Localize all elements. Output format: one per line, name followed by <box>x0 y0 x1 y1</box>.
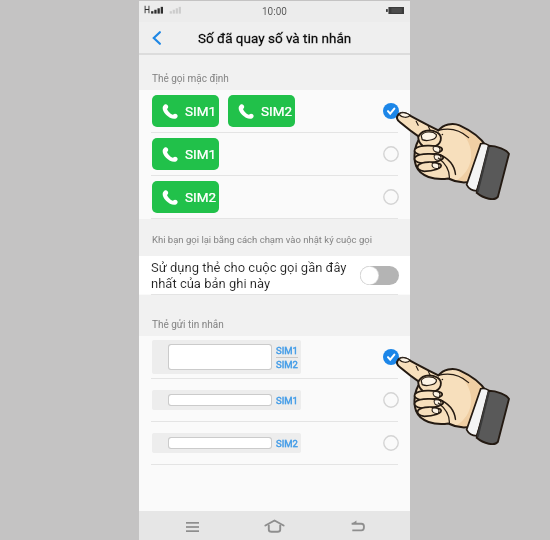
staticText: SIM2 <box>276 438 298 449</box>
staticText: Thẻ gọi mặc định <box>152 73 229 85</box>
staticText: SIM1 <box>185 146 217 162</box>
button[interactable]: Sử dụng thẻ cho cuộc gọi gần đây nhất củ… <box>139 256 410 294</box>
staticText: SIM1 <box>276 345 298 356</box>
button[interactable]: Select <box>381 433 401 453</box>
button[interactable]: Select <box>381 347 401 367</box>
button[interactable]: SIM1 <box>139 379 410 421</box>
staticText: Sử dụng thẻ cho cuộc gọi gần đây nhất củ… <box>151 260 351 291</box>
button[interactable]: SIM1 <box>139 90 410 132</box>
button[interactable]: Select <box>381 187 401 207</box>
button[interactable]: Select <box>381 101 401 121</box>
button[interactable]: SIM2 <box>139 176 410 218</box>
button[interactable]: Menu <box>179 513 205 539</box>
staticText: H <box>144 5 151 15</box>
button[interactable]: SIM1 <box>139 336 410 378</box>
staticText: Thẻ gửi tin nhắn <box>152 319 224 331</box>
button[interactable]: Back <box>139 22 175 53</box>
staticText: SIM2 <box>276 359 298 370</box>
button[interactable]: SIM2 <box>139 422 410 464</box>
button[interactable]: Back <box>345 513 371 539</box>
button[interactable]: SIM1 <box>139 133 410 175</box>
staticText: Khi bạn gọi lại bằng cách chạm vào nhật … <box>152 234 372 245</box>
staticText: SIM1 <box>185 103 217 119</box>
button[interactable]: Select <box>381 144 401 164</box>
staticText: 10:00 <box>262 6 287 18</box>
staticText: SIM1 <box>276 395 298 406</box>
staticText: SIM2 <box>261 103 293 119</box>
button[interactable]: Home <box>261 513 287 539</box>
staticText: SIM2 <box>185 189 217 205</box>
staticText: Số đã quay số và tin nhắn <box>198 30 352 46</box>
button[interactable]: Select <box>381 390 401 410</box>
